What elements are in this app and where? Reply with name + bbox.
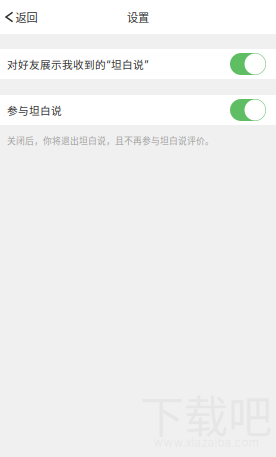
staticText: www.xiazaiba.com	[153, 435, 258, 450]
button[interactable]: 对好友展示我收到的“坦白说”	[0, 49, 276, 79]
button[interactable]: 返回	[0, 0, 46, 34]
staticText: 返回	[16, 9, 38, 25]
staticText: 下载吧	[140, 382, 272, 446]
staticText: 参与坦白说	[7, 102, 62, 118]
staticText: 对好友展示我收到的“坦白说”	[7, 56, 149, 72]
staticText: 设置	[127, 9, 149, 25]
staticText: 关闭后，你将退出坦白说，且不再参与坦白说评价。	[7, 134, 214, 147]
button[interactable]: 参与坦白说	[0, 95, 276, 125]
